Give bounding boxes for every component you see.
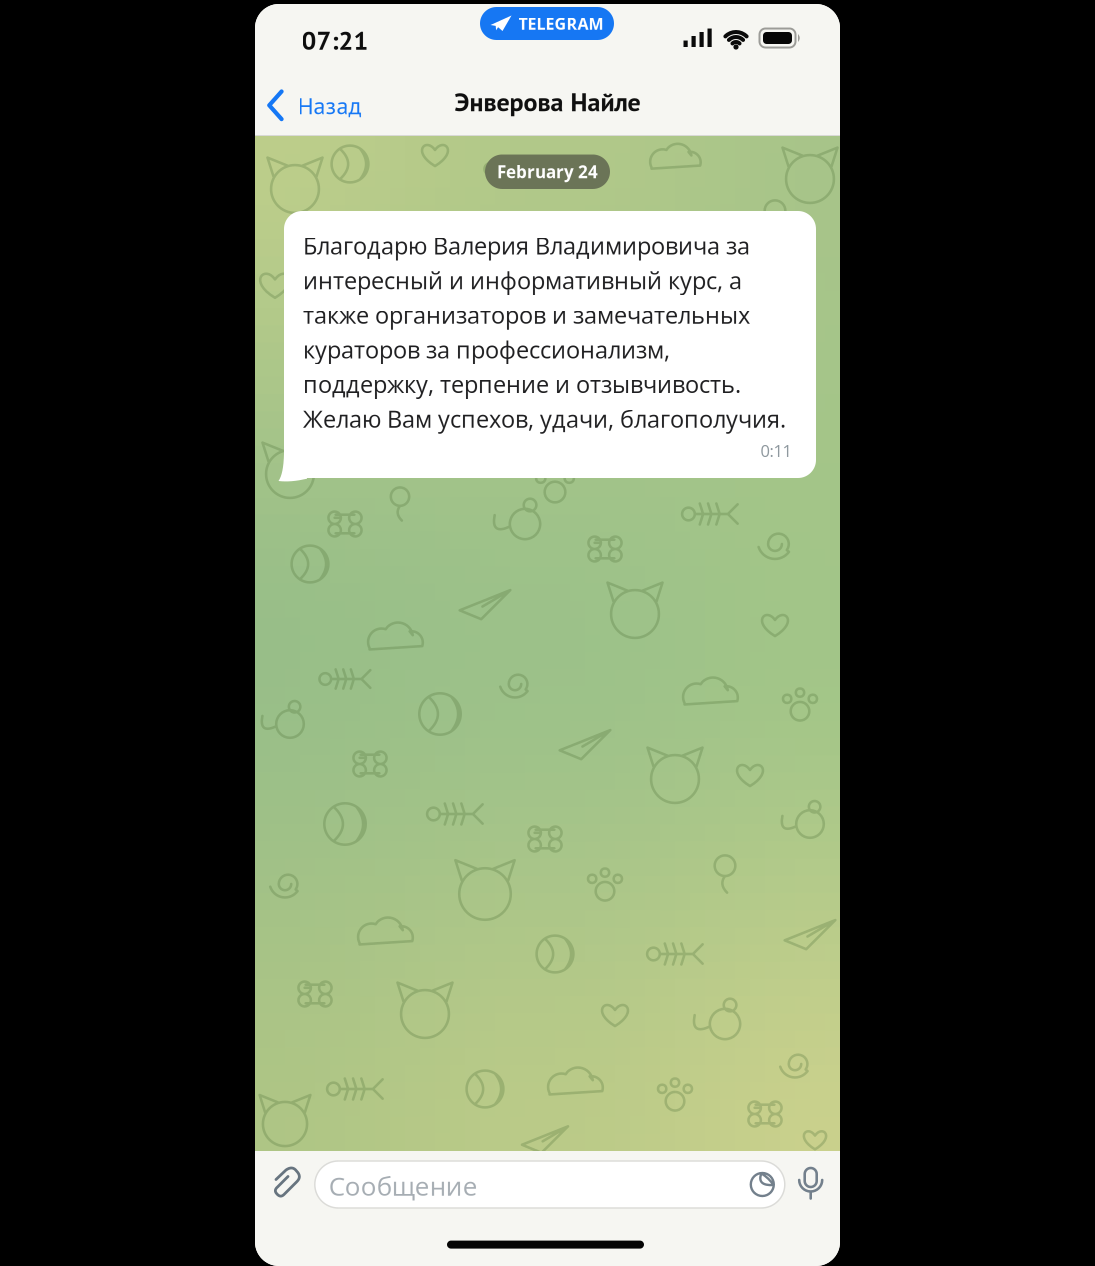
button[interactable]: TELEGRAM — [480, 7, 614, 40]
staticText: кураторов за профессионализм, — [303, 333, 670, 365]
staticText: 07:21 — [301, 23, 368, 57]
staticText: Сообщение — [329, 1168, 478, 1203]
button[interactable]: Attach file — [269, 1168, 299, 1202]
staticText: February 24 — [497, 160, 598, 183]
staticText: поддержку, терпение и отзывчивость. — [303, 368, 741, 400]
staticText: Благодарю Валерия Владимировича за — [303, 229, 750, 261]
staticText: Энверова Найле — [454, 85, 640, 118]
button[interactable]: Сообщение — [315, 1161, 785, 1208]
button[interactable]: Назад — [261, 89, 368, 121]
staticText: Назад — [298, 90, 362, 121]
button[interactable]: Record voice message — [797, 1167, 825, 1203]
staticText: 0:11 — [760, 439, 791, 462]
button[interactable]: Set self-destruct timer — [749, 1171, 776, 1198]
staticText: также организаторов и замечательных — [303, 299, 750, 331]
staticText: интересный и информативный курс, а — [303, 264, 742, 296]
staticText: TELEGRAM — [518, 13, 603, 34]
staticText: Желаю Вам успехов, удачи, благополучия. — [303, 402, 786, 434]
